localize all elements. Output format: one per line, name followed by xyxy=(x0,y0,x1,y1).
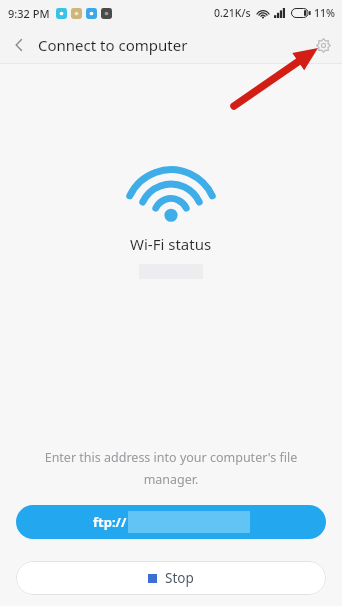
button[interactable]: ftp:// xyxy=(16,505,326,539)
staticText: Stop xyxy=(165,569,194,587)
button[interactable]: Settings xyxy=(304,26,342,64)
staticText: 11% xyxy=(314,6,335,20)
button[interactable]: Back xyxy=(0,26,38,64)
button[interactable]: Stop xyxy=(16,561,326,595)
staticText: 0.21K/s xyxy=(214,6,251,20)
staticText: Enter this address into your computer's … xyxy=(16,449,326,488)
staticText: Wi-Fi status xyxy=(130,234,212,254)
staticText: 9:32 PM xyxy=(8,6,50,21)
staticText: Connect to computer xyxy=(38,35,188,55)
staticText: ftp:// xyxy=(93,513,127,531)
